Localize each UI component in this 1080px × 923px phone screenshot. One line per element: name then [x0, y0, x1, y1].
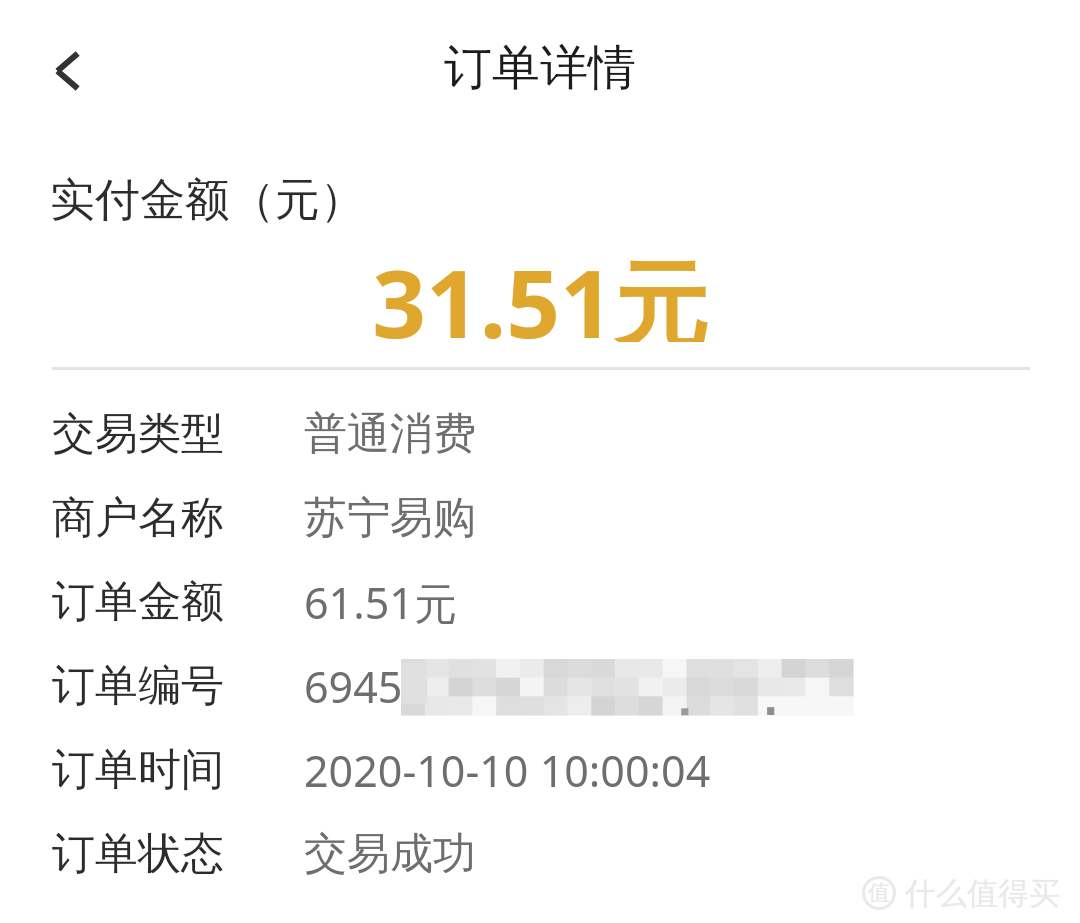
staticText: 订单时间 [52, 743, 224, 797]
button[interactable]: 交易类型 [0, 400, 1080, 468]
button[interactable]: 订单状态 [0, 820, 1080, 888]
staticText: 订单金额 [52, 575, 224, 629]
staticText: 实付金额（元） [50, 172, 365, 229]
button[interactable]: 商户名称 [0, 484, 1080, 552]
staticText: 6945 [304, 657, 403, 716]
staticText: 2020-10-10 10:00:04 [304, 741, 711, 800]
staticText: 订单编号 [52, 659, 224, 713]
staticText: 订单详情 [444, 38, 636, 98]
staticText: 订单状态 [52, 827, 224, 881]
staticText: 什么值得买 [905, 874, 1060, 913]
staticText: 值 [868, 879, 890, 907]
staticText: 31.51元 [372, 238, 708, 342]
staticText: 普通消费 [304, 407, 476, 461]
staticText: 商户名称 [52, 491, 224, 545]
staticText: 交易类型 [52, 407, 224, 461]
staticText: 61.51元 [304, 573, 457, 632]
button[interactable]: 订单时间 [0, 736, 1080, 804]
button[interactable]: Back [20, 23, 116, 119]
button[interactable]: 订单编号 [0, 652, 1080, 720]
button[interactable]: 订单金额 [0, 568, 1080, 636]
staticText: 苏宁易购 [304, 491, 476, 545]
staticText: 交易成功 [304, 827, 476, 881]
